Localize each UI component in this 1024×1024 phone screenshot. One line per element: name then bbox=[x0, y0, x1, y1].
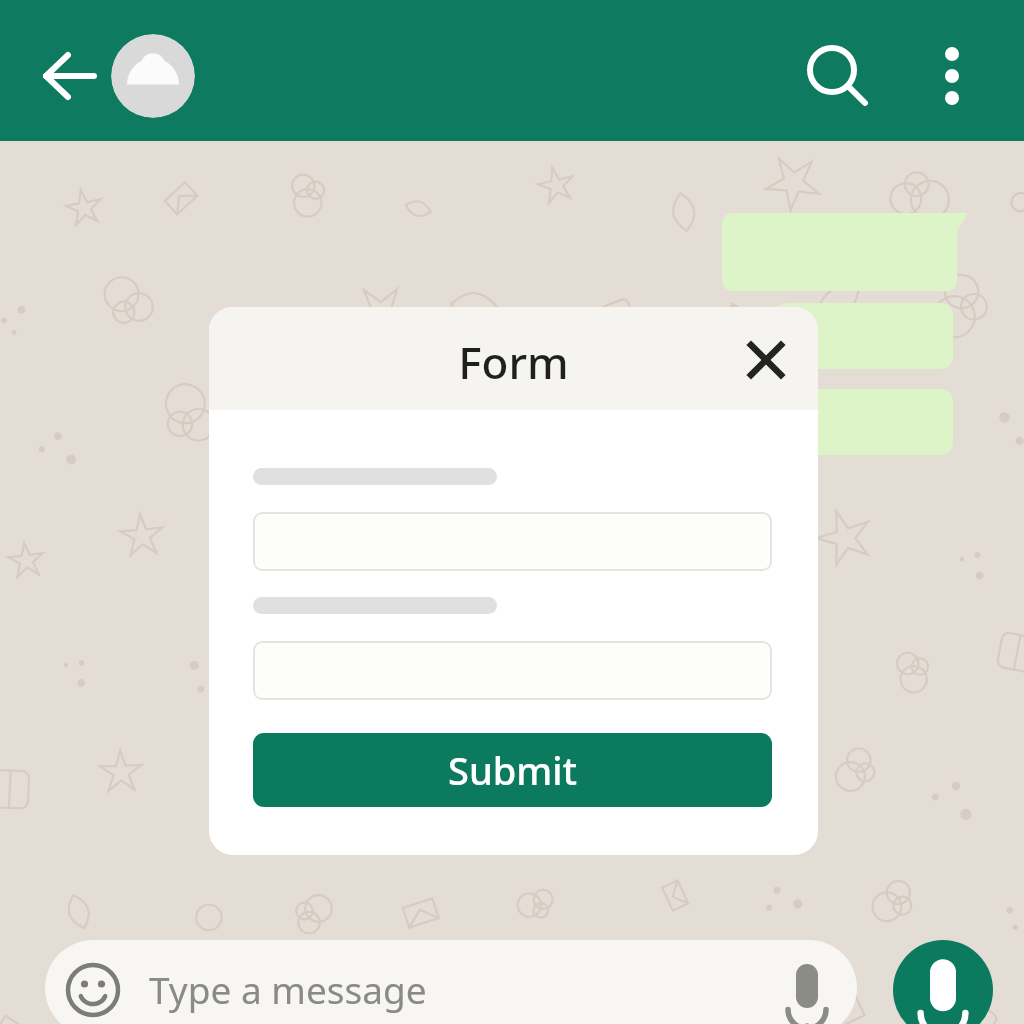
button[interactable] bbox=[253, 641, 772, 700]
button[interactable]: Search bbox=[797, 35, 867, 105]
button[interactable]: Record voice message bbox=[893, 940, 993, 1024]
button[interactable] bbox=[253, 512, 772, 571]
staticText: Submit bbox=[448, 744, 578, 796]
button[interactable]: Voice note bbox=[780, 963, 834, 1017]
button[interactable]: Type a message bbox=[45, 940, 857, 1024]
button[interactable]: More options bbox=[917, 35, 987, 105]
button[interactable]: Back bbox=[38, 41, 108, 111]
staticText: Type a message bbox=[149, 964, 427, 1014]
button[interactable]: Submit bbox=[253, 733, 772, 807]
button[interactable]: Contact profile bbox=[111, 34, 195, 118]
button[interactable]: Close bbox=[737, 331, 795, 389]
staticText: Form bbox=[209, 332, 818, 435]
